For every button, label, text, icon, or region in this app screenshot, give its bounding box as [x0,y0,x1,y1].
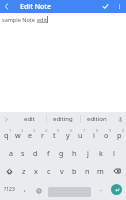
staticText: g [59,148,64,158]
staticText: w [15,130,21,140]
staticText: 1 [9,128,12,133]
button[interactable]: v [55,162,68,180]
button[interactable]: i [87,126,100,144]
button[interactable]: q [0,126,12,144]
button[interactable]: o [100,126,113,144]
staticText: ?123 [4,186,15,193]
button[interactable]: Emoji [31,180,44,198]
staticText: p [117,130,122,140]
staticText: c [47,166,51,176]
staticText: u [78,130,83,140]
staticText: l [113,148,115,158]
staticText: h [72,148,77,158]
button[interactable]: t [48,126,61,144]
button[interactable]: y [61,126,74,144]
staticText: 9 [109,128,112,133]
button[interactable]: e [24,126,36,144]
staticText: 5 [57,128,60,133]
button[interactable]: x [30,162,42,180]
staticText: 3 [33,128,36,133]
staticText: sample Note [2,16,37,23]
staticText: 0 [122,128,125,133]
button[interactable]: g [55,144,68,162]
button[interactable]: k [94,144,107,162]
staticText: q [4,130,9,140]
button[interactable]: edit [12,112,46,126]
staticText: m [97,166,104,176]
staticText: y [66,130,70,140]
staticText: 4 [45,128,48,133]
button[interactable]: edition [80,112,114,126]
button[interactable]: m [94,162,107,180]
staticText: 8 [96,128,99,133]
staticText: i [93,130,95,140]
staticText: s [21,148,25,158]
button[interactable]: w [12,126,24,144]
button[interactable]: Enter [111,184,122,195]
button[interactable]: Shift [0,162,18,180]
staticText: 2 [21,128,24,133]
button[interactable]: s [17,144,29,162]
staticText: edit [37,16,47,23]
staticText: t [53,130,56,140]
staticText: o [104,130,109,140]
staticText: Edit Note [20,2,52,12]
button[interactable]: r [36,126,48,144]
button[interactable]: n [81,162,94,180]
button[interactable]: p [113,126,126,144]
staticText: 6 [70,128,73,133]
button[interactable]: Backspace [107,162,126,180]
staticText: e [28,130,33,140]
staticText: v [60,166,64,176]
button[interactable]: . [94,180,107,198]
button[interactable]: j [81,144,94,162]
staticText: , [24,184,26,194]
staticText: b [72,166,77,176]
staticText: n [85,166,90,176]
button[interactable]: a [5,144,17,162]
button[interactable]: u [74,126,87,144]
button[interactable]: c [42,162,55,180]
staticText: a [9,148,14,158]
button[interactable]: b [68,162,81,180]
staticText: edit [24,115,35,123]
button[interactable]: ?123 [0,180,18,198]
button[interactable]: Voice input [114,112,126,126]
button[interactable]: More options [112,0,126,13]
staticText: edition [87,115,107,123]
button[interactable]: h [68,144,81,162]
staticText: d [33,148,38,158]
button[interactable]: Back [0,0,13,13]
button[interactable]: editing [46,112,80,126]
button[interactable]: l [107,144,120,162]
staticText: j [87,148,89,158]
button[interactable]: z [18,162,30,180]
staticText: r [41,130,44,140]
button[interactable]: More suggestions [0,112,12,126]
staticText: f [47,148,50,158]
staticText: z [22,166,26,176]
button[interactable]: , [18,180,31,198]
button[interactable]: Save [99,0,112,13]
staticText: editing [53,115,73,123]
button[interactable]: f [42,144,55,162]
staticText: 7 [83,128,86,133]
staticText: x [34,166,38,176]
button[interactable]: d [29,144,42,162]
staticText: k [99,148,103,158]
staticText: . [100,184,102,194]
